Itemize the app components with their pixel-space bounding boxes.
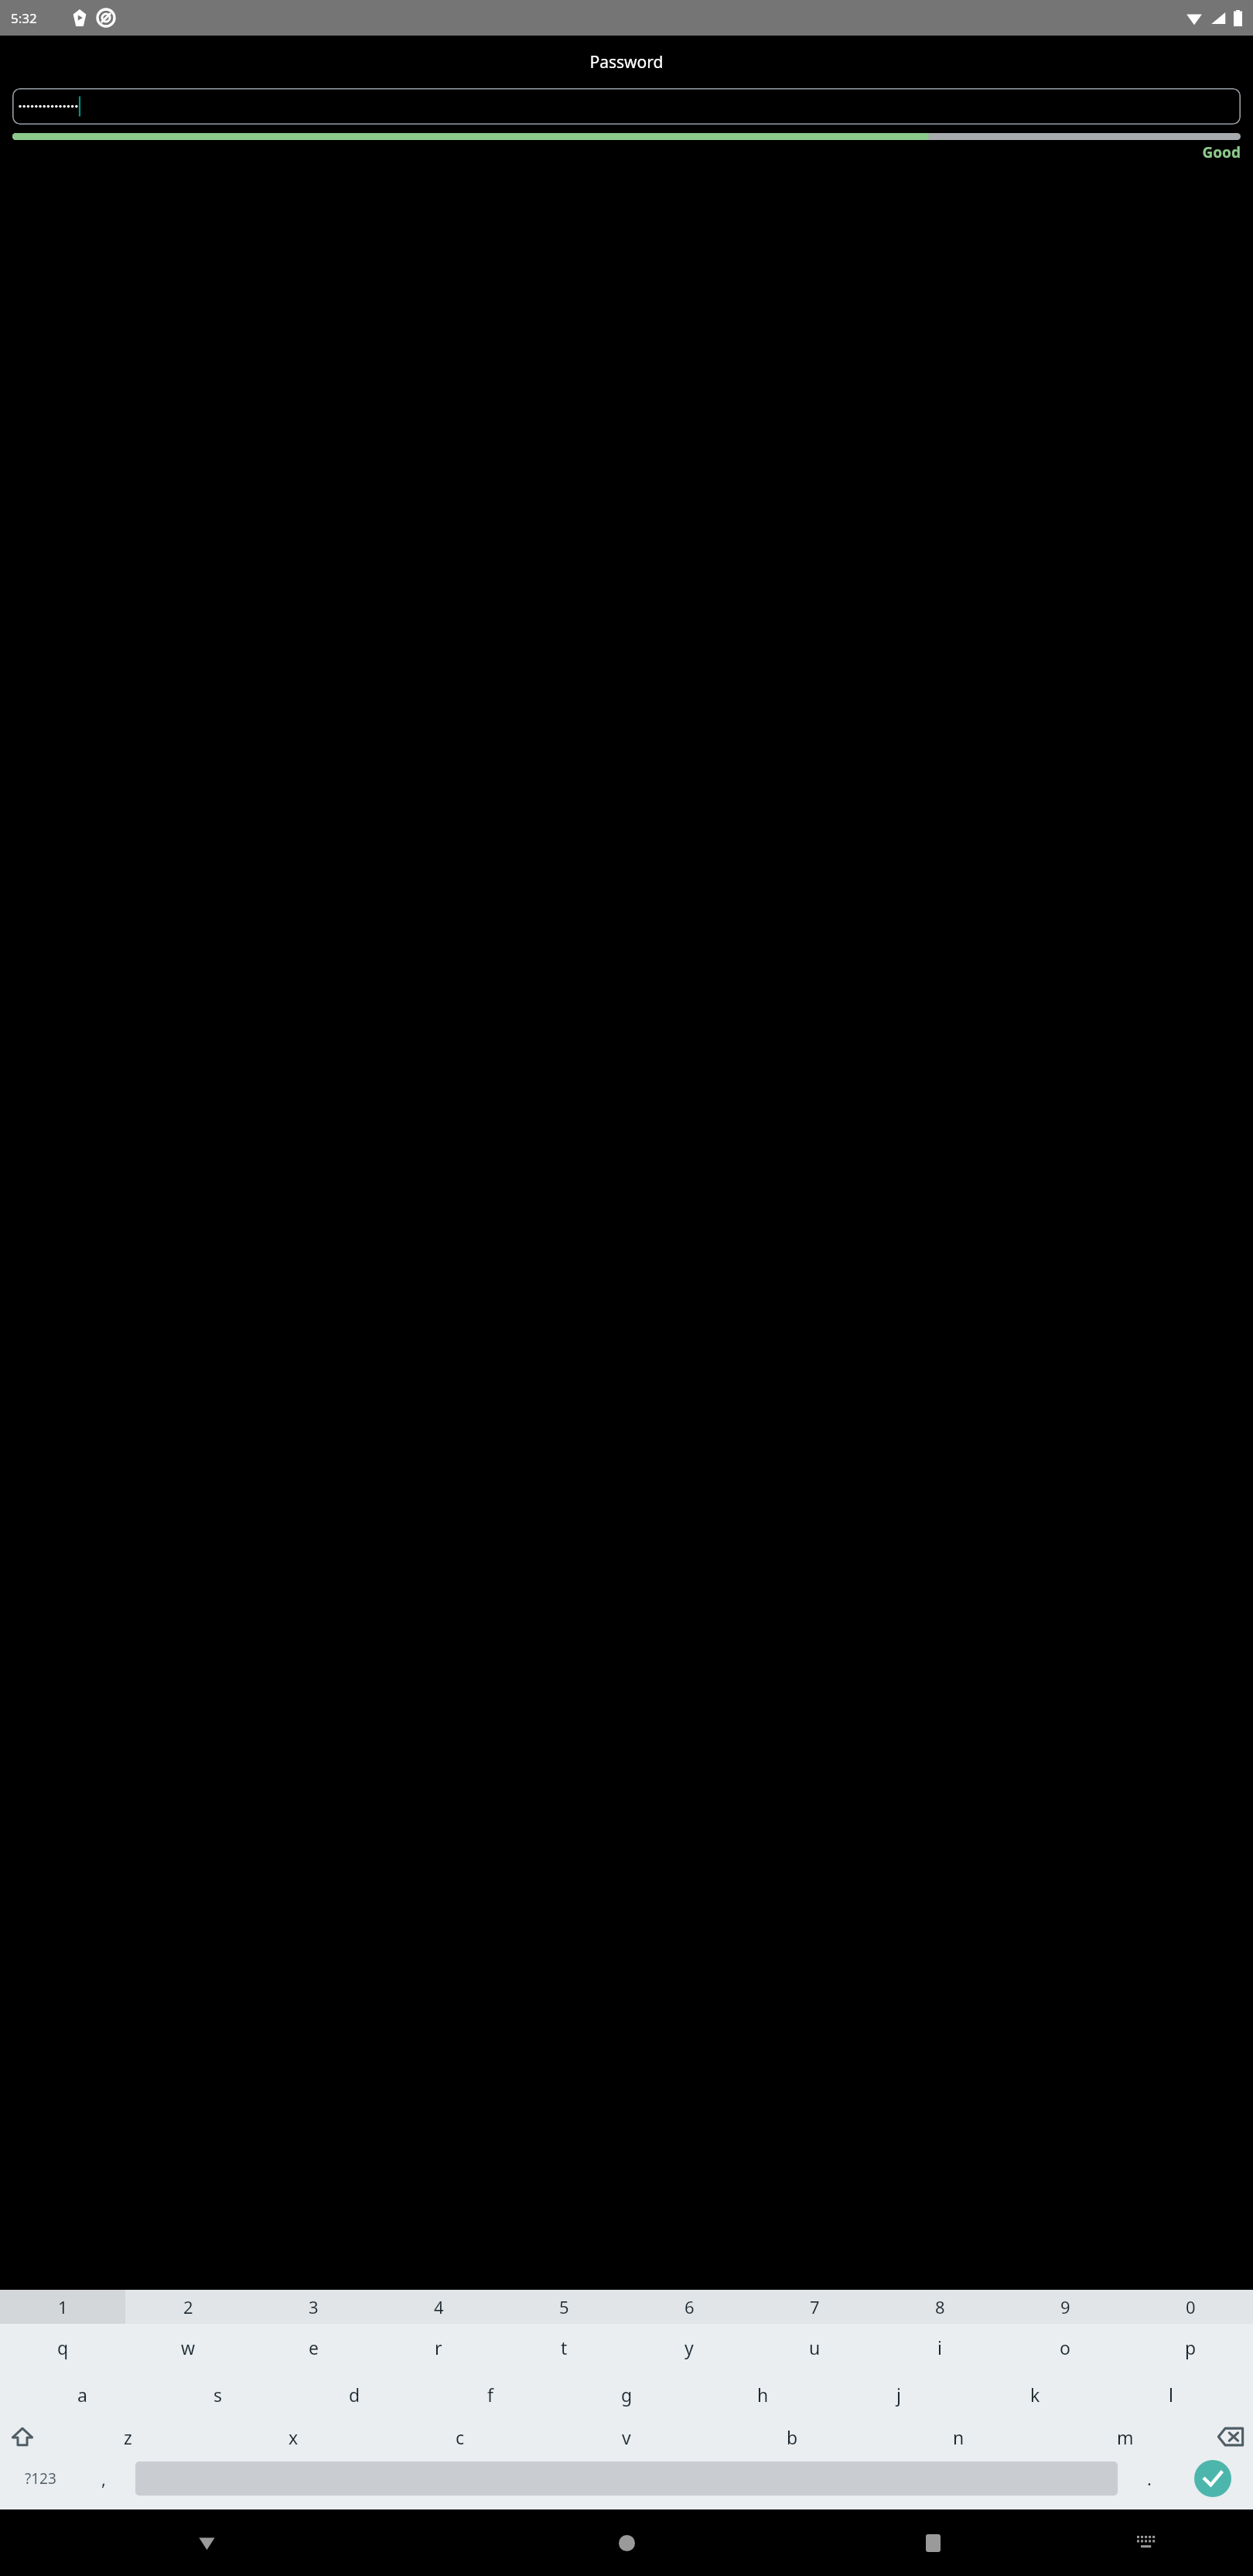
staticText: 5 [559,2295,569,2318]
staticText: 6 [685,2295,695,2318]
staticText: y [685,2335,694,2359]
button[interactable]: , [81,2455,126,2502]
button[interactable]: n [876,2418,1042,2455]
staticText: l [1169,2383,1173,2407]
staticText: 8 [935,2295,945,2318]
staticText: n [953,2425,965,2449]
button[interactable]: y [626,2324,752,2371]
staticText: b [787,2425,798,2449]
staticText: f [487,2383,493,2407]
staticText: j [896,2383,901,2407]
button[interactable]: f [422,2371,558,2418]
button[interactable]: 7 [752,2290,877,2324]
button[interactable]: r [376,2324,501,2371]
staticText: 2 [183,2295,193,2318]
button[interactable]: s [150,2371,286,2418]
staticText: u [809,2335,821,2359]
staticText: o [1060,2335,1070,2359]
staticText: Good [0,142,1241,162]
staticText: c [456,2425,465,2449]
staticText: v [622,2425,631,2449]
staticText: x [288,2425,299,2449]
button[interactable]: k [967,2371,1103,2418]
button[interactable]: Home [420,2509,834,2576]
staticText: h [757,2383,769,2407]
staticText: q [57,2335,69,2359]
staticText: p [1185,2335,1197,2359]
button[interactable]: t [501,2324,626,2371]
button[interactable]: p [1128,2324,1253,2371]
button[interactable] [12,88,1241,125]
staticText: k [1030,2383,1040,2407]
staticText: 1 [58,2295,68,2318]
button[interactable]: 5 [501,2290,626,2324]
staticText: s [213,2383,223,2407]
staticText: 5:32 [11,9,37,27]
staticText: 0 [1186,2295,1196,2318]
staticText: r [435,2335,442,2359]
button[interactable]: o [1002,2324,1128,2371]
staticText: w [181,2335,196,2359]
button[interactable]: Recents [827,2509,1040,2576]
staticText: e [309,2335,319,2359]
staticText: 9 [1060,2295,1070,2318]
button[interactable]: ?123 [0,2455,81,2502]
button[interactable]: c [377,2418,543,2455]
button[interactable]: 6 [626,2290,752,2324]
staticText: 4 [434,2295,444,2318]
button[interactable]: Back [0,2509,414,2576]
staticText: g [621,2383,633,2407]
staticText: z [124,2425,132,2449]
button[interactable]: e [251,2324,376,2371]
button[interactable]: u [752,2324,877,2371]
button[interactable]: a [14,2371,150,2418]
staticText: t [561,2335,568,2359]
button[interactable]: . [1127,2455,1172,2502]
button[interactable]: i [877,2324,1002,2371]
button[interactable]: 8 [877,2290,1002,2324]
staticText: d [349,2383,360,2407]
button[interactable]: Enter [1172,2455,1253,2502]
staticText: m [1117,2425,1134,2449]
button[interactable]: Switch keyboard [1040,2509,1253,2576]
staticText: . [1147,2467,1152,2490]
staticText: 7 [810,2295,820,2318]
button[interactable]: w [125,2324,251,2371]
button[interactable]: 9 [1002,2290,1128,2324]
staticText: ?123 [25,2468,56,2489]
staticText: a [77,2383,87,2407]
button[interactable]: j [831,2371,967,2418]
staticText: Password [0,51,1253,73]
staticText: 3 [309,2295,319,2318]
button[interactable]: x [210,2418,377,2455]
staticText: i [937,2335,942,2359]
button[interactable]: m [1042,2418,1208,2455]
button[interactable]: q [0,2324,125,2371]
button[interactable]: 4 [376,2290,501,2324]
button[interactable]: Backspace [1208,2418,1253,2455]
button[interactable]: 3 [251,2290,376,2324]
button[interactable]: 2 [125,2290,251,2324]
button[interactable]: 0 [1128,2290,1253,2324]
button[interactable]: g [558,2371,695,2418]
button[interactable]: b [709,2418,876,2455]
button[interactable]: 1 [0,2290,125,2324]
button[interactable]: l [1103,2371,1239,2418]
button[interactable]: d [286,2371,422,2418]
button[interactable]: h [695,2371,831,2418]
button[interactable]: z [45,2418,210,2455]
button[interactable]: Shift [0,2418,45,2455]
button[interactable]: v [543,2418,709,2455]
staticText: , [101,2467,106,2490]
